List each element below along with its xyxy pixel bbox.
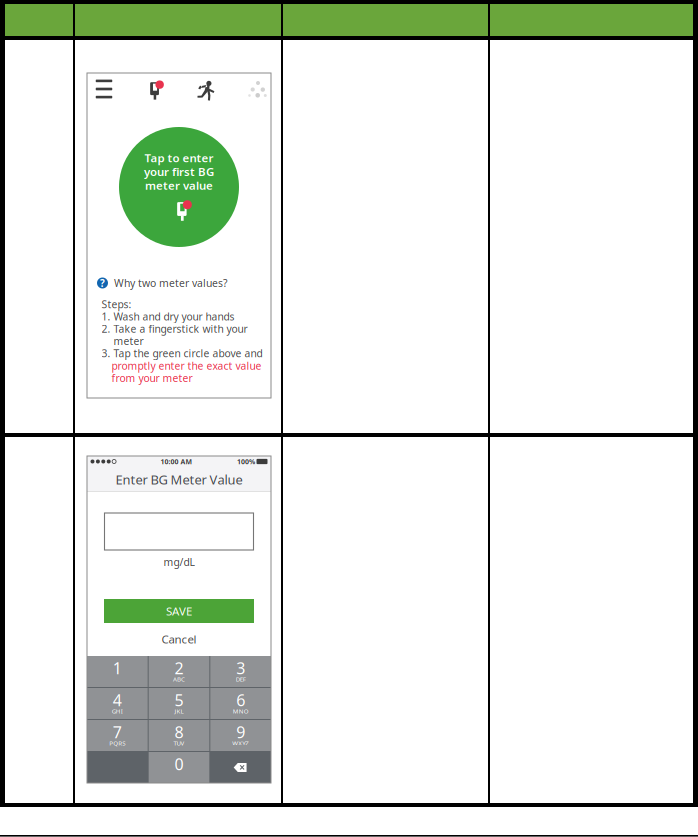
staticText: DEF	[236, 675, 246, 683]
staticText: 10:00 AM	[160, 457, 192, 466]
staticText: MNO	[233, 707, 249, 715]
staticText: WXYZ	[232, 739, 249, 747]
button[interactable]: 9	[210, 720, 271, 751]
staticText: SAVE	[166, 603, 192, 619]
staticText: 6	[236, 689, 245, 711]
staticText: 2	[174, 657, 183, 679]
staticText: Tap to enter	[144, 150, 213, 166]
staticText: 0	[174, 753, 183, 775]
button[interactable]: 2	[149, 656, 209, 687]
staticText: ?	[100, 276, 105, 290]
staticText: Why two meter values?	[114, 276, 228, 290]
staticText: 4	[113, 689, 122, 711]
staticText: meter	[113, 334, 143, 348]
button[interactable]: 4	[87, 688, 148, 719]
staticText: ABC	[173, 675, 185, 683]
button[interactable]: 6	[210, 688, 271, 719]
staticText: Cancel	[161, 631, 196, 647]
staticText: 3	[236, 657, 245, 679]
staticText: TUV	[173, 739, 184, 747]
staticText: from your meter	[111, 371, 192, 385]
button[interactable]: Cancel	[149, 632, 209, 646]
staticText: meter value	[145, 177, 213, 193]
staticText: 1	[113, 657, 122, 679]
button[interactable]: Blank	[87, 752, 148, 783]
staticText: promptly enter the exact value	[111, 359, 261, 373]
staticText: PQRS	[109, 739, 125, 747]
button[interactable]: Activity	[191, 78, 221, 104]
button[interactable]: Tap to enter	[119, 127, 239, 247]
button[interactable]: 8	[149, 720, 209, 751]
button[interactable]: 3	[210, 656, 271, 687]
staticText: 2. Take a fingerstick with your	[101, 322, 247, 336]
staticText: 3. Tap the green circle above and	[101, 346, 262, 360]
button[interactable]: More	[243, 77, 273, 103]
staticText: Enter BG Meter Value	[115, 471, 242, 488]
staticText: JKL	[174, 707, 183, 715]
staticText: 9	[236, 721, 245, 743]
button[interactable]: 1	[87, 656, 148, 687]
staticText: GHI	[112, 707, 123, 715]
staticText: Steps:	[101, 297, 131, 311]
button[interactable]: 5	[149, 688, 209, 719]
staticText: your first BG	[144, 164, 214, 179]
staticText: 5	[174, 689, 183, 711]
button[interactable]: ?	[87, 275, 271, 291]
button[interactable]: Delete	[210, 752, 271, 783]
staticText: mg/dL	[163, 555, 194, 569]
button[interactable]: 0	[149, 752, 209, 783]
staticText: 100%	[237, 457, 255, 466]
button[interactable]	[104, 513, 253, 550]
button[interactable]: Blood glucose meter	[142, 78, 172, 104]
button[interactable]: 7	[87, 720, 148, 751]
staticText: 7	[113, 721, 122, 743]
staticText: 1. Wash and dry your hands	[101, 309, 234, 323]
button[interactable]: SAVE	[104, 599, 254, 623]
staticText: 8	[174, 721, 183, 743]
button[interactable]: Menu	[89, 76, 119, 102]
